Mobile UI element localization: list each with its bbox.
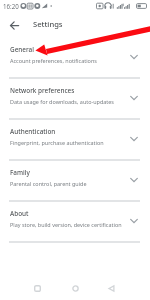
button[interactable]: General: [0, 37, 150, 78]
button[interactable]: Network preferences: [0, 78, 150, 119]
staticText: Settings: [33, 19, 63, 29]
staticText: Network preferences: [10, 86, 75, 95]
staticText: About: [10, 209, 29, 218]
button[interactable]: Authentication: [0, 119, 150, 160]
button[interactable]: Family: [0, 160, 150, 201]
staticText: Account preferences, notifications: [10, 57, 97, 64]
staticText: General: [10, 45, 34, 54]
button[interactable]: Back: [5, 16, 23, 34]
staticText: Family: [10, 168, 30, 177]
staticText: Fingerprint, purchase authentication: [10, 139, 104, 146]
button[interactable]: Home: [64, 277, 87, 300]
button[interactable]: Back: [100, 277, 123, 300]
staticText: Data usage for downloads, auto-updates: [10, 98, 114, 105]
button[interactable]: Recents: [26, 277, 49, 300]
button[interactable]: About: [0, 201, 150, 242]
staticText: Parental control, parent guide: [10, 180, 87, 187]
staticText: Play store, build version, device certif…: [10, 221, 122, 228]
staticText: 16:20: [3, 2, 19, 10]
staticText: Authentication: [10, 127, 56, 136]
